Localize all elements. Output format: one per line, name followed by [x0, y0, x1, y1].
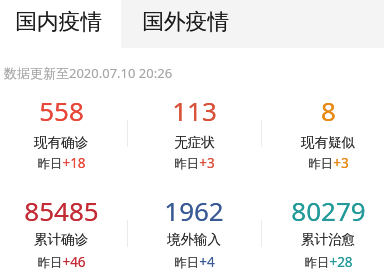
staticText: 现有确诊 [34, 134, 88, 151]
staticText: 1962 [164, 193, 224, 228]
staticText: 现有疑似 [301, 134, 355, 151]
button[interactable]: 558 [0, 93, 128, 174]
staticText: 国外疫情 [142, 8, 230, 35]
button[interactable]: 113 [127, 93, 261, 174]
staticText: 8 [321, 93, 336, 128]
staticText: 境外输入 [167, 231, 221, 248]
staticText: 累计治愈 [301, 231, 355, 248]
staticText: 昨日+28 [304, 253, 353, 271]
staticText: 113 [172, 93, 217, 128]
staticText: 无症状 [174, 134, 215, 151]
staticText: 80279 [291, 193, 366, 228]
staticText: 境外输入 [167, 231, 221, 248]
button[interactable]: 国内疫情 [0, 0, 121, 48]
button[interactable]: 国外疫情 [121, 0, 384, 48]
staticText: 昨日+4 [174, 253, 215, 271]
staticText: 1962 [164, 193, 224, 228]
staticText: 昨日+18 [37, 154, 86, 172]
button[interactable]: 8 [261, 93, 384, 174]
staticText: 113 [172, 93, 217, 128]
staticText: 558 [39, 93, 84, 128]
staticText: 昨日+3 [174, 154, 215, 172]
staticText: 国内疫情 [15, 8, 103, 35]
staticText: 昨日+28 [304, 253, 353, 271]
staticText: 昨日+4 [174, 253, 215, 271]
button[interactable]: 85485 [0, 193, 128, 273]
staticText: 现有疑似 [301, 134, 355, 151]
staticText: 国内疫情 [15, 8, 103, 35]
staticText: 昨日+3 [174, 154, 215, 172]
staticText: 昨日+3 [308, 154, 349, 172]
staticText: 8 [321, 93, 336, 128]
button[interactable]: 80279 [261, 193, 384, 273]
staticText: 80279 [291, 193, 366, 228]
staticText: 国外疫情 [142, 8, 230, 35]
staticText: 昨日+3 [308, 154, 349, 172]
staticText: 昨日+18 [37, 154, 86, 172]
staticText: 558 [39, 93, 84, 128]
staticText: 昨日+46 [37, 253, 86, 271]
staticText: 昨日+46 [37, 253, 86, 271]
staticText: 累计确诊 [34, 231, 88, 248]
staticText: 85485 [24, 193, 99, 228]
staticText: 85485 [24, 193, 99, 228]
staticText: 现有确诊 [34, 134, 88, 151]
staticText: 数据更新至2020.07.10 20:26 [4, 64, 173, 82]
staticText: 累计治愈 [301, 231, 355, 248]
staticText: 累计确诊 [34, 231, 88, 248]
button[interactable]: 1962 [127, 193, 261, 273]
staticText: 无症状 [174, 134, 215, 151]
